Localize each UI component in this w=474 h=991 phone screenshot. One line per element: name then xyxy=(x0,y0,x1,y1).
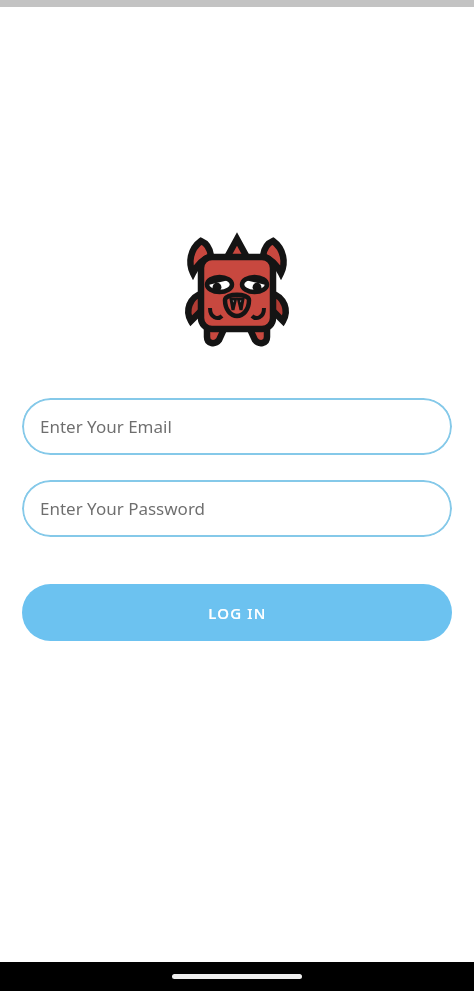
staticText: LOG IN xyxy=(208,603,267,623)
button[interactable]: LOG IN xyxy=(22,584,452,641)
staticText: Enter Your Email xyxy=(40,415,172,438)
button[interactable]: Enter Your Password xyxy=(22,480,452,537)
button[interactable]: Enter Your Email xyxy=(22,398,452,455)
other: App logo xyxy=(179,235,295,349)
staticText: Enter Your Password xyxy=(40,497,206,520)
